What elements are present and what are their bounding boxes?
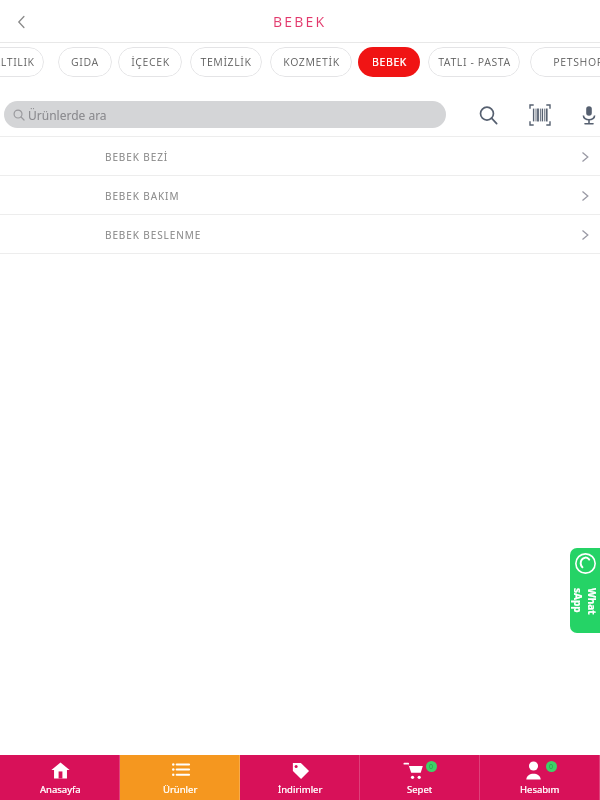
staticText: KOZMETİK bbox=[283, 55, 340, 69]
button[interactable]: TATLI - PASTA bbox=[428, 47, 520, 77]
button[interactable]: KAHVALTILIK bbox=[0, 47, 44, 77]
staticText: PETSHOP bbox=[553, 55, 600, 69]
button[interactable]: Back bbox=[0, 0, 44, 43]
button[interactable]: Barcode scanner bbox=[524, 99, 556, 131]
staticText: BEBEK bbox=[372, 55, 407, 69]
button[interactable]: Ürünler bbox=[120, 755, 240, 800]
button[interactable]: Voice search bbox=[573, 99, 600, 131]
button[interactable]: Anasayfa bbox=[0, 755, 120, 800]
button[interactable]: PETSHOP bbox=[530, 47, 600, 77]
button[interactable]: BEBEK BESLENME bbox=[0, 215, 600, 254]
staticText: İndirimler bbox=[278, 783, 323, 796]
button[interactable]: 0 bbox=[360, 755, 480, 800]
staticText: TATLI - PASTA bbox=[438, 55, 511, 69]
staticText: BEBEK BESLENME bbox=[105, 228, 202, 242]
button[interactable]: İndirimler bbox=[240, 755, 360, 800]
staticText: BEBEK bbox=[273, 12, 327, 31]
staticText: 0 bbox=[429, 762, 434, 772]
button[interactable]: Search bbox=[472, 99, 504, 131]
staticText: 0 bbox=[549, 762, 554, 772]
button[interactable]: KOZMETİK bbox=[270, 47, 352, 77]
button[interactable]: İÇECEK bbox=[118, 47, 182, 77]
staticText: Ürünlerde ara bbox=[28, 107, 107, 123]
button[interactable]: 0 bbox=[480, 755, 600, 800]
staticText: WhatsApp bbox=[571, 588, 599, 618]
staticText: Sepet bbox=[407, 783, 433, 796]
staticText: İÇECEK bbox=[131, 55, 170, 69]
button[interactable]: BEBEK bbox=[358, 47, 420, 77]
button[interactable]: BEBEK BAKIM bbox=[0, 176, 600, 215]
button[interactable]: Ürünlerde ara bbox=[4, 101, 446, 128]
staticText: Hesabım bbox=[520, 783, 560, 796]
staticText: BEBEK BAKIM bbox=[105, 189, 180, 203]
button[interactable]: GIDA bbox=[58, 47, 112, 77]
staticText: Anasayfa bbox=[40, 783, 81, 796]
button[interactable]: TEMİZLİK bbox=[190, 47, 262, 77]
staticText: KAHVALTILIK bbox=[0, 55, 35, 69]
staticText: TEMİZLİK bbox=[200, 55, 252, 69]
staticText: GIDA bbox=[71, 55, 99, 69]
staticText: Ürünler bbox=[163, 783, 198, 796]
button[interactable]: WhatsApp bbox=[570, 548, 600, 633]
staticText: BEBEK BEZİ bbox=[105, 150, 169, 164]
button[interactable]: BEBEK BEZİ bbox=[0, 137, 600, 176]
